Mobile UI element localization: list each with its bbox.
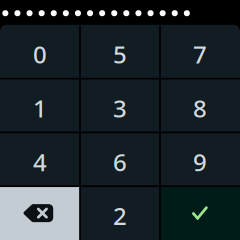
staticText: 0 xyxy=(33,38,47,70)
button[interactable]: 6 xyxy=(80,132,160,186)
button[interactable]: 7 xyxy=(160,25,240,79)
button[interactable]: Confirm xyxy=(160,186,240,240)
button[interactable]: 9 xyxy=(160,132,240,186)
button[interactable]: 1 xyxy=(0,79,80,132)
staticText: 9 xyxy=(193,146,207,178)
staticText: 6 xyxy=(113,146,127,178)
staticText: 3 xyxy=(113,92,127,124)
staticText: 1 xyxy=(33,92,47,124)
button[interactable]: 2 xyxy=(80,186,160,240)
staticText: 4 xyxy=(33,146,47,178)
button[interactable]: 4 xyxy=(0,132,80,186)
button[interactable]: 8 xyxy=(160,79,240,132)
button[interactable]: 5 xyxy=(80,25,160,79)
staticText: 7 xyxy=(193,38,207,70)
button[interactable]: Delete xyxy=(0,186,80,240)
button[interactable]: 0 xyxy=(0,25,80,79)
staticText: 8 xyxy=(193,92,207,124)
staticText: 2 xyxy=(113,200,127,232)
staticText: 5 xyxy=(113,38,127,70)
button[interactable]: 3 xyxy=(80,79,160,132)
